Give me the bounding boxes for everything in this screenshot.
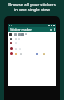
button[interactable]: Sticker maker xyxy=(8,27,56,32)
staticText: in one single view xyxy=(14,6,50,12)
staticText: Sticker maker xyxy=(10,27,32,32)
staticText: Browse all your stickers xyxy=(8,1,56,7)
